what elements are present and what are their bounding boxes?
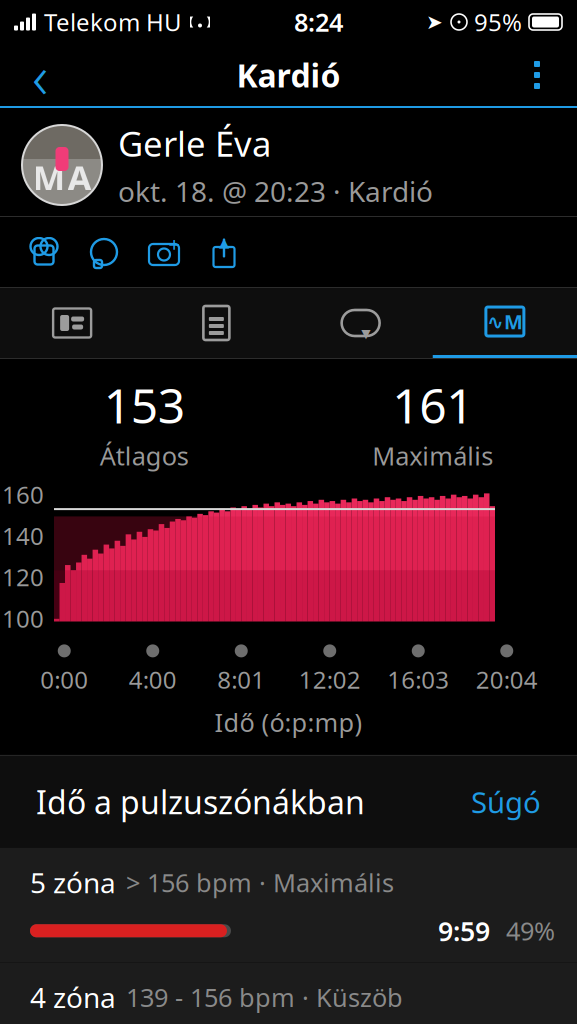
staticText: 139 - 156 bpm · Küszöb (126, 980, 403, 1014)
staticText: ‹ (32, 34, 48, 116)
staticText: ▲ (219, 235, 229, 250)
button[interactable]: Details (144, 288, 288, 358)
staticText: 153 (104, 373, 185, 437)
button[interactable]: 5 zóna (0, 848, 577, 962)
staticText: 8:24 (294, 5, 343, 39)
button[interactable]: Add photo (134, 224, 194, 280)
staticText: 140 (2, 520, 44, 552)
staticText: Telekom HU (44, 6, 182, 38)
staticText: Átlagos (100, 439, 189, 472)
staticText: > 156 bpm · Maximális (126, 866, 394, 899)
staticText: 12:02 (299, 663, 361, 695)
staticText: 49% (506, 914, 555, 948)
button[interactable]: 4 zóna (0, 962, 577, 1024)
staticText: + (168, 231, 179, 257)
staticText: Gerle Éva (118, 120, 271, 166)
staticText: 9:59 (438, 913, 490, 948)
staticText: 20:04 (476, 663, 538, 695)
staticText: 0:00 (40, 663, 88, 695)
staticText: ∿Μ (487, 308, 523, 335)
staticText: Idő a pulzuszónákban (36, 781, 365, 823)
staticText: A (67, 154, 91, 200)
staticText: ▾ (361, 322, 370, 344)
staticText: 5 zóna (30, 864, 116, 901)
button[interactable]: Share (194, 224, 254, 280)
staticText: 100 (2, 602, 44, 634)
button[interactable]: Like (14, 224, 74, 280)
staticText: Súgó (471, 782, 541, 821)
staticText: 160 (2, 478, 44, 510)
staticText: 95% (474, 6, 522, 38)
button[interactable]: Heart rate (433, 288, 577, 358)
button[interactable]: More options (509, 47, 565, 103)
button[interactable]: Laps (288, 288, 433, 358)
staticText: Maximális (372, 439, 493, 472)
staticText: 16:03 (387, 663, 449, 695)
button[interactable]: Comment (74, 224, 134, 280)
staticText: M (32, 154, 65, 200)
staticText: 8:01 (217, 663, 265, 695)
staticText: ➤ (426, 11, 443, 33)
staticText: 4 zóna (30, 978, 116, 1016)
staticText: 4:00 (129, 663, 177, 695)
staticText: 120 (2, 561, 44, 593)
staticText: 161 (392, 373, 473, 437)
button[interactable]: Map (0, 288, 144, 358)
staticText: okt. 18. @ 20:23 · Kardió (118, 172, 433, 210)
button[interactable]: Idő a pulzuszónákban (0, 756, 577, 848)
staticText: Kardió (236, 54, 340, 96)
staticText: Idő (ó:p:mp) (214, 705, 362, 739)
button[interactable]: Back (12, 47, 68, 103)
